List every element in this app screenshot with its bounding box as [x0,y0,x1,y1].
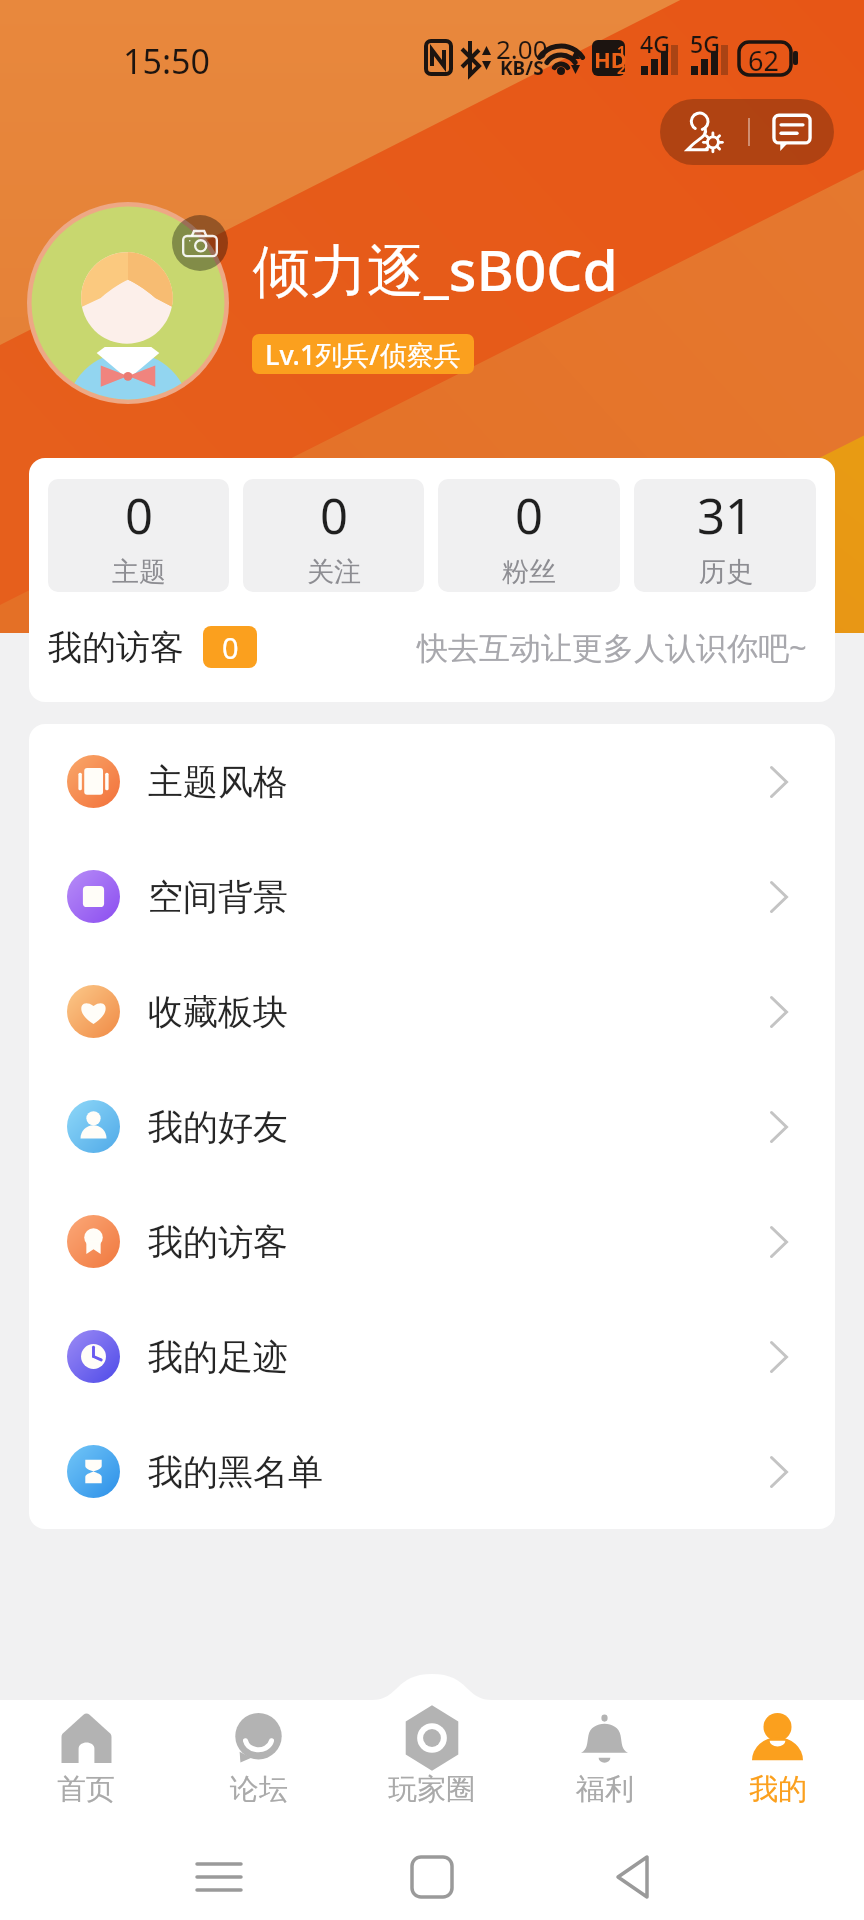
staticText: 收藏板块 [148,990,288,1034]
staticText: 福利 [576,1771,634,1808]
button[interactable]: 31 [634,479,816,592]
button[interactable]: 主题风格 [29,724,835,839]
staticText: 0 [125,482,154,549]
button[interactable]: Account settings [660,99,748,165]
button[interactable]: 论坛 [172,1674,345,1802]
staticText: 关注 [307,555,361,589]
staticText: 我的访客 [48,626,184,669]
button[interactable]: 0 [438,479,620,592]
staticText: 论坛 [230,1771,288,1808]
staticText: 我的 [749,1771,807,1808]
button[interactable]: 玩家圈 [345,1674,518,1802]
button[interactable]: 我的足迹 [29,1299,835,1414]
button[interactable]: 福利 [518,1674,691,1802]
staticText: 我的访客 [148,1220,288,1264]
button[interactable]: 收藏板块 [29,954,835,1069]
staticText: 2 [617,58,626,78]
staticText: 0 [222,628,239,667]
staticText: 2.00 [496,31,548,66]
staticText: KB/S [500,55,544,81]
staticText: 主题风格 [148,760,288,804]
button[interactable]: 0 [243,479,424,592]
staticText: 快去互动让更多人认识你吧~ [417,626,807,668]
button[interactable]: 0 [48,479,229,592]
staticText: 15:50 [123,38,210,84]
staticText: Lv.1列兵/侦察兵 [265,336,461,373]
staticText: 玩家圈 [388,1771,475,1808]
button[interactable]: 空间背景 [29,839,835,954]
staticText: 空间背景 [148,875,288,919]
button[interactable]: Change avatar [27,202,229,404]
staticText: 我的足迹 [148,1335,288,1379]
staticText: 1 [617,40,626,60]
button[interactable]: 首页 [0,1674,172,1802]
staticText: 我的好友 [148,1105,288,1149]
staticText: HD [594,44,627,74]
button[interactable]: 我的访客 [29,1184,835,1299]
staticText: 5G [690,28,720,59]
staticText: 首页 [57,1771,115,1808]
staticText: 31 [697,482,754,549]
staticText: 历史 [699,555,753,589]
staticText: 0 [515,482,544,549]
staticText: 粉丝 [502,555,556,589]
button[interactable]: Lv.1列兵/侦察兵 [252,334,474,374]
staticText: 4G [640,28,670,59]
button[interactable]: 我的访客 [29,592,835,702]
button[interactable]: 我的好友 [29,1069,835,1184]
button[interactable]: 我的 [691,1674,864,1802]
staticText: 倾力逐_sB0Cd [253,230,618,308]
staticText: 0 [320,482,349,549]
staticText: 我的黑名单 [148,1450,323,1494]
button[interactable]: Messages [750,99,834,165]
button[interactable]: 我的黑名单 [29,1414,835,1529]
staticText: 主题 [112,555,166,589]
staticText: 62 [748,42,779,79]
